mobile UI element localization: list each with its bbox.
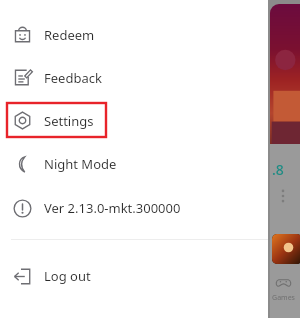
staticText: Redeem <box>44 26 95 44</box>
staticText: Ver 2.13.0-mkt.300000 <box>44 199 181 217</box>
staticText: .8 <box>272 160 284 179</box>
staticText: Log out <box>44 267 91 285</box>
staticText: Settings <box>44 112 94 130</box>
staticText: Feedback <box>44 69 102 87</box>
button[interactable]: Redeem <box>0 13 268 56</box>
staticText: Games <box>272 293 295 303</box>
staticText: Night Mode <box>44 155 117 173</box>
button[interactable]: Settings <box>0 99 268 142</box>
button[interactable]: Log out <box>0 254 268 298</box>
button[interactable]: Ver 2.13.0-mkt.300000 <box>0 186 268 230</box>
button[interactable]: Feedback <box>0 56 268 99</box>
button[interactable]: Night Mode <box>0 142 268 186</box>
